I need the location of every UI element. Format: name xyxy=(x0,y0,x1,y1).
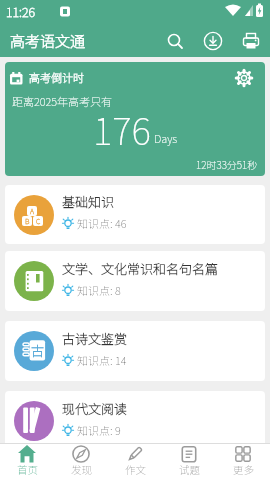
staticText: Days xyxy=(154,130,178,146)
button[interactable]: 文学、文化常识和名句名篇 xyxy=(5,251,265,311)
button[interactable] xyxy=(232,24,270,57)
staticText: 12时33分51秒 xyxy=(196,157,258,171)
button[interactable]: 更多 xyxy=(216,444,270,480)
staticText: 基础知识 xyxy=(62,192,115,211)
button[interactable]: 作文 xyxy=(108,444,162,480)
staticText: 11:26 xyxy=(6,2,35,20)
staticText: A xyxy=(30,206,35,216)
button[interactable]: 高考倒计时 xyxy=(5,62,265,176)
staticText: 首页 xyxy=(17,462,38,477)
button[interactable]: A xyxy=(5,185,265,244)
staticText: 距离2025年高考只有 xyxy=(12,93,112,109)
staticText: 更多 xyxy=(233,462,254,477)
staticText: 知识点: 9 xyxy=(77,422,121,438)
staticText: 高考倒计时 xyxy=(29,69,84,85)
button[interactable]: 现代文阅读 xyxy=(5,391,265,451)
button[interactable] xyxy=(156,24,194,57)
staticText: 试题 xyxy=(179,462,200,477)
staticText: 文学、文化常识和名句名篇 xyxy=(62,259,219,278)
staticText: 176 xyxy=(93,102,151,156)
staticText: 知识点: 14 xyxy=(77,352,127,368)
staticText: C xyxy=(36,216,41,226)
staticText: 现代文阅读 xyxy=(62,399,128,418)
staticText: B xyxy=(25,216,30,226)
staticText: 知识点: 46 xyxy=(77,215,127,231)
staticText: 高考语文通 xyxy=(10,30,86,52)
button[interactable] xyxy=(234,68,254,88)
staticText: 古 xyxy=(31,341,45,360)
button[interactable]: 首页 xyxy=(0,444,54,480)
staticText: 发现 xyxy=(71,462,92,477)
button[interactable]: 古 xyxy=(5,321,265,381)
staticText: 知识点: 8 xyxy=(77,282,121,298)
button[interactable]: 发现 xyxy=(54,444,108,480)
staticText: 古诗文鉴赏 xyxy=(62,329,128,348)
button[interactable]: 试题 xyxy=(162,444,216,480)
button[interactable] xyxy=(194,24,232,57)
staticText: 作文 xyxy=(125,462,146,477)
